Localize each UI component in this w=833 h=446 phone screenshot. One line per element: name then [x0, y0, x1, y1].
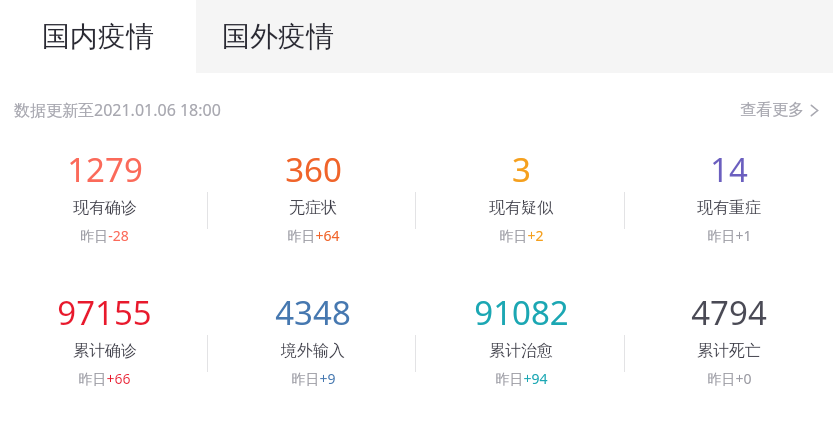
staticText: 14: [710, 147, 748, 192]
staticText: 累计治愈: [489, 341, 553, 361]
staticText: 累计死亡: [697, 341, 761, 361]
staticText: 昨日+9: [291, 369, 336, 388]
staticText: 昨日+66: [78, 369, 131, 388]
staticText: 数据更新至2021.01.06 18:00: [14, 99, 221, 121]
button[interactable]: 4794: [625, 288, 833, 390]
button[interactable]: 360: [209, 145, 417, 247]
button[interactable]: 4348: [209, 288, 417, 390]
staticText: 昨日+0: [707, 369, 752, 388]
staticText: 无症状: [289, 198, 337, 218]
staticText: 昨日+94: [495, 369, 548, 388]
staticText: 3: [512, 147, 531, 192]
staticText: 现有重症: [697, 198, 761, 218]
other: 查看更多: [810, 104, 819, 117]
staticText: 累计确诊: [73, 341, 137, 361]
staticText: 4348: [275, 290, 351, 335]
staticText: 查看更多: [740, 100, 804, 120]
staticText: 91082: [474, 290, 569, 335]
staticText: 昨日+1: [707, 226, 752, 245]
button[interactable]: 查看更多: [740, 100, 819, 120]
staticText: 4794: [691, 290, 767, 335]
button[interactable]: 国外疫情: [196, 0, 833, 73]
staticText: 境外输入: [281, 341, 345, 361]
button[interactable]: 91082: [417, 288, 625, 390]
button[interactable]: 97155: [0, 288, 209, 390]
staticText: 国外疫情: [222, 19, 334, 54]
button[interactable]: 国内疫情: [0, 0, 196, 73]
staticText: 97155: [57, 290, 152, 335]
staticText: 昨日+64: [287, 226, 340, 245]
staticText: 昨日+2: [499, 226, 544, 245]
staticText: 现有确诊: [73, 198, 137, 218]
staticText: 1279: [67, 147, 143, 192]
button[interactable]: 3: [417, 145, 625, 247]
staticText: 360: [285, 147, 342, 192]
button[interactable]: 1279: [0, 145, 209, 247]
staticText: 国内疫情: [42, 19, 154, 54]
staticText: 昨日-28: [80, 226, 129, 245]
button[interactable]: 14: [625, 145, 833, 247]
staticText: 现有疑似: [489, 198, 553, 218]
